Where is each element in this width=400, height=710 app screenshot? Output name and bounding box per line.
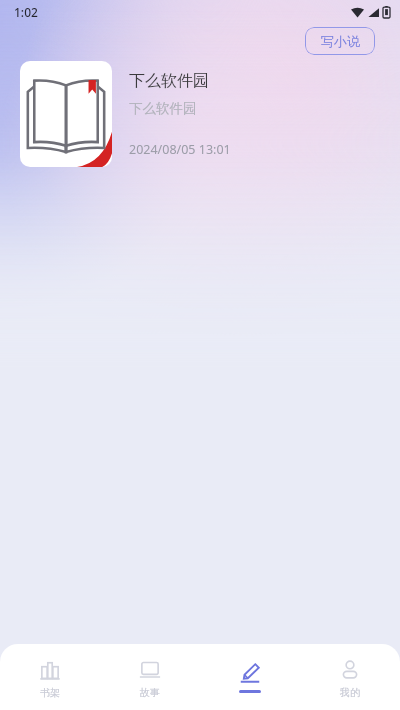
button[interactable]: 下么软件园 xyxy=(20,61,384,167)
button[interactable]: 故事 xyxy=(100,644,200,710)
staticText: 下么软件园 xyxy=(129,71,209,91)
button[interactable]: 我的 xyxy=(300,644,400,710)
staticText: 2024/08/05 13:01 xyxy=(129,141,231,158)
staticText: 1:02 xyxy=(14,4,38,20)
button[interactable]: 写小说 xyxy=(305,27,375,55)
button[interactable]: 写作 xyxy=(200,644,300,710)
staticText: 故事 xyxy=(140,686,160,699)
staticText: 书架 xyxy=(40,686,60,699)
staticText: 下么软件园 xyxy=(129,100,197,117)
staticText: 写小说 xyxy=(321,33,360,49)
staticText: 我的 xyxy=(340,686,360,699)
button[interactable]: 书架 xyxy=(0,644,100,710)
